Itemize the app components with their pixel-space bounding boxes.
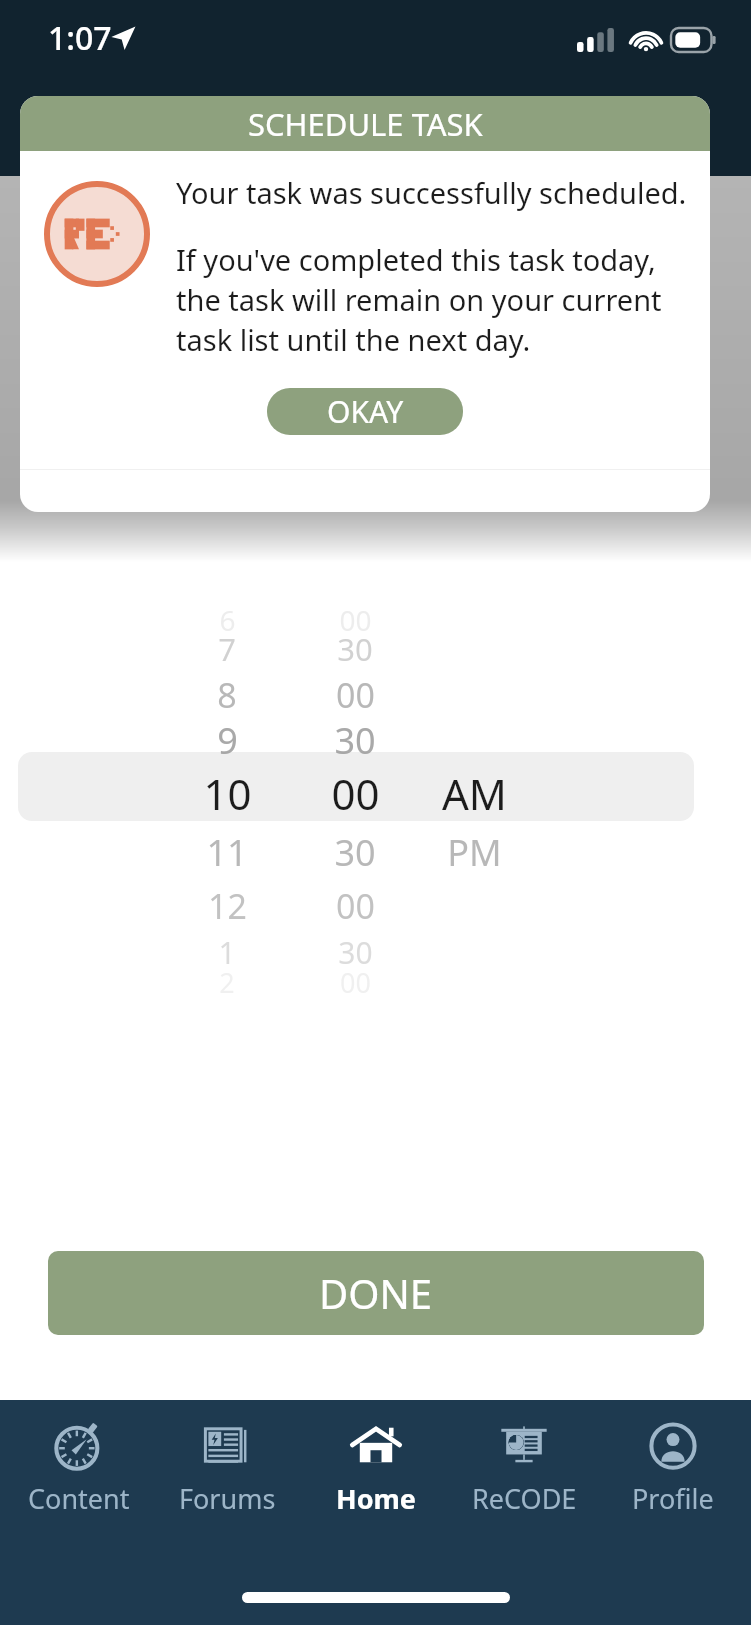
staticText: 11: [206, 828, 248, 877]
button[interactable]: Home: [306, 1418, 446, 1517]
staticText: 2: [219, 964, 235, 1001]
staticText: OKAY: [327, 391, 404, 432]
staticText: Your task was successfully scheduled.: [176, 173, 687, 212]
button[interactable]: DONE: [48, 1251, 704, 1335]
button[interactable]: Profile: [603, 1418, 743, 1517]
staticText: 30: [337, 628, 373, 670]
staticText: Profile: [632, 1480, 714, 1517]
button[interactable]: OKAY: [267, 388, 463, 435]
staticText: AM: [442, 765, 507, 822]
staticText: Home: [336, 1480, 416, 1517]
staticText: 6: [219, 601, 236, 639]
staticText: SCHEDULE TASK: [248, 103, 483, 145]
staticText: 00: [340, 964, 371, 1001]
staticText: 00: [336, 672, 375, 718]
staticText: 10: [203, 765, 252, 822]
staticText: ReCODE: [472, 1480, 577, 1517]
staticText: 1: [218, 932, 236, 973]
button[interactable]: Forums: [157, 1418, 297, 1517]
staticText: 30: [338, 932, 373, 973]
staticText: 00: [339, 601, 372, 639]
staticText: Content: [28, 1480, 130, 1517]
staticText: DONE: [319, 1266, 433, 1320]
staticText: 30: [334, 828, 376, 877]
staticText: 30: [334, 716, 376, 765]
staticText: 00: [336, 883, 375, 929]
staticText: 8: [217, 672, 237, 718]
staticText: 00: [331, 765, 380, 822]
staticText: PM: [447, 828, 502, 877]
button[interactable]: Content: [9, 1418, 149, 1517]
staticText: If you've completed this task today, the…: [176, 240, 662, 360]
staticText: 12: [208, 883, 247, 929]
staticText: Forums: [179, 1480, 276, 1517]
staticText: 9: [217, 716, 238, 765]
staticText: 7: [218, 628, 236, 670]
button[interactable]: ReCODE: [454, 1418, 594, 1517]
staticText: 1:07: [48, 16, 112, 60]
